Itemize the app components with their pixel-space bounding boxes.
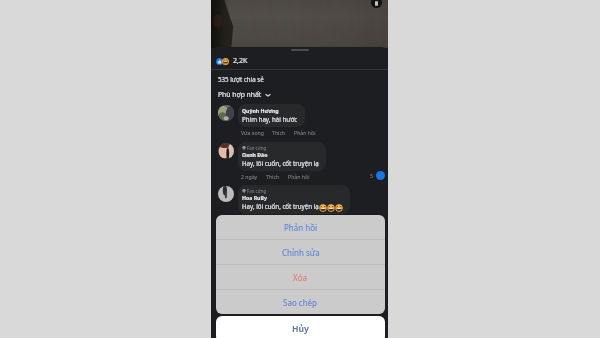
staticText: Phản hồi <box>288 173 310 180</box>
staticText: Hoa RuBy <box>242 194 267 201</box>
button[interactable]: Sao chép <box>216 290 385 314</box>
staticText: Hay, lôi cuốn, cốt truyện lạ <box>242 202 319 210</box>
staticText: Hay, lôi cuốn, cốt truyện lạ <box>242 159 319 167</box>
button[interactable]: 5 replies <box>370 171 385 180</box>
staticText: Xóa <box>293 272 308 283</box>
staticText: Quỳnh Hương <box>242 107 279 114</box>
staticText: Thích <box>266 173 280 180</box>
button[interactable]: Reactions 2,2K <box>216 56 248 66</box>
staticText: Fan cứng <box>247 145 267 151</box>
button[interactable]: Save video <box>371 0 382 8</box>
staticText: Vừa xong <box>241 129 264 136</box>
staticText: Sao chép <box>283 297 318 308</box>
staticText: Phản hồi <box>284 222 318 233</box>
staticText: Thích <box>272 129 286 136</box>
button[interactable]: Quỳnh Hương <box>238 104 305 127</box>
staticText: 5 <box>370 172 373 179</box>
staticText: Phù hợp nhất <box>218 90 262 99</box>
staticText: Phản hồi <box>294 129 316 136</box>
staticText: Hủy <box>292 323 309 335</box>
button[interactable]: Hủy <box>216 316 385 338</box>
staticText: Oanh Đào <box>242 151 268 158</box>
staticText: Phim hay, hài hước <box>242 115 298 123</box>
staticText: Fan cứng <box>247 188 267 194</box>
button[interactable]: Phản hồi <box>216 215 385 239</box>
button[interactable]: Phù hợp nhất <box>217 89 272 100</box>
staticText: 2,2K <box>233 56 248 66</box>
button[interactable]: Xóa <box>216 265 385 289</box>
staticText: 2 ngày <box>241 173 258 180</box>
button[interactable]: Chỉnh sửa <box>216 240 385 264</box>
staticText: Chỉnh sửa <box>282 247 320 258</box>
button[interactable]: Fan cứng <box>238 185 350 214</box>
button[interactable]: Fan cứng <box>238 142 326 171</box>
staticText: 535 lượt chia sẻ <box>218 75 264 83</box>
